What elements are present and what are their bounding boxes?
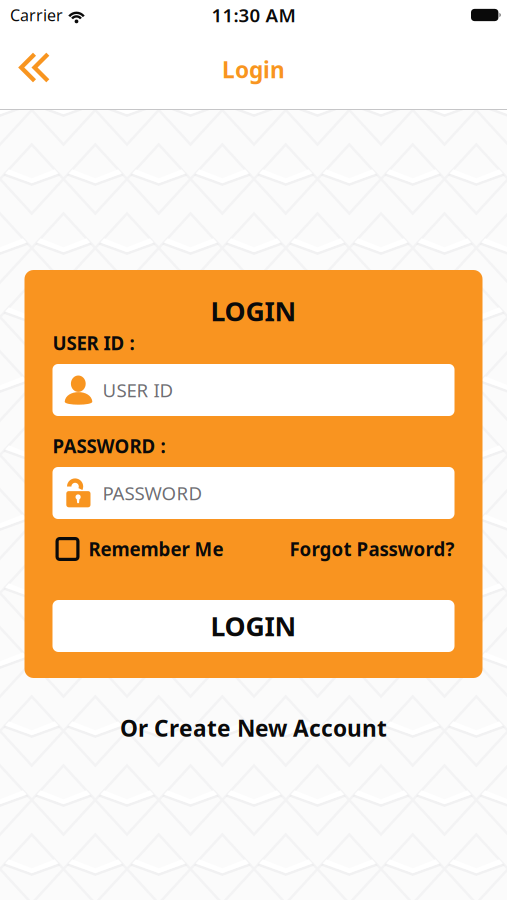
button[interactable]: Remember Me — [52, 536, 223, 562]
staticText: Login — [222, 54, 285, 84]
button[interactable]: USER ID — [52, 364, 454, 416]
button[interactable]: Or Create New Account — [110, 707, 397, 749]
button[interactable]: Forgot Password? — [289, 536, 454, 562]
staticText: LOGIN — [210, 293, 296, 329]
staticText: Or Create New Account — [120, 713, 387, 743]
button[interactable]: LOGIN — [52, 600, 454, 652]
staticText: USER ID : — [52, 331, 134, 355]
staticText: PASSWORD : — [52, 434, 165, 458]
button[interactable]: Back — [10, 45, 59, 94]
staticText: Carrier — [10, 4, 63, 26]
staticText: USER ID — [102, 378, 173, 402]
staticText: LOGIN — [210, 608, 296, 644]
button[interactable]: PASSWORD — [52, 467, 454, 519]
staticText: Remember Me — [88, 537, 223, 561]
staticText: PASSWORD — [102, 481, 202, 505]
staticText: Forgot Password? — [289, 537, 454, 561]
staticText: 11:30 AM — [211, 3, 295, 27]
